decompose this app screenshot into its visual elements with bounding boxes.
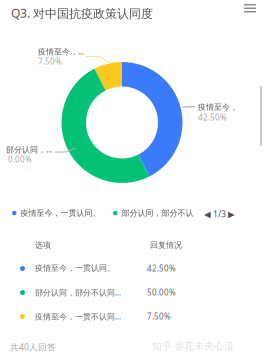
staticText: ◀ 1/3 ▶ (204, 208, 235, 220)
staticText: 疫情至今，一贯认同。 (20, 208, 100, 218)
staticText: 疫情至今，一贯认同。 (35, 263, 115, 273)
staticText: 50.00% (147, 287, 176, 298)
staticText: 7.50% (38, 56, 62, 67)
staticText: 知乎 @花未央心流 (152, 339, 234, 353)
button[interactable]: 部分认同，部分不认 (113, 208, 193, 218)
button[interactable]: Menu (238, 0, 262, 18)
staticText: 回复情况 (150, 240, 182, 250)
staticText: 42.50% (198, 112, 227, 123)
staticText: Q3. 对中国抗疫政策认同度 (11, 5, 153, 21)
staticText: 疫情至今，... (38, 46, 84, 57)
staticText: 42.50% (147, 263, 176, 274)
button[interactable]: 疫情至今，一贯认同。 (12, 208, 100, 218)
staticText: 部分认同，部分不认 (121, 208, 193, 218)
staticText: 部分认同，部分不认同... (35, 287, 121, 298)
staticText: 部分认同，... (6, 144, 52, 155)
staticText: 选项 (35, 240, 51, 250)
staticText: 疫情至今，一贯不认同... (35, 311, 121, 322)
staticText: 0.00% (8, 154, 32, 165)
staticText: 7.50% (147, 311, 171, 322)
button[interactable]: Page 1 of 3 (204, 208, 235, 220)
staticText: 疫情至今， (198, 102, 238, 112)
staticText: 共40人回答 (10, 341, 56, 353)
